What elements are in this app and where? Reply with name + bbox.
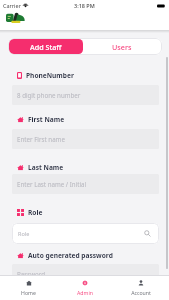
staticText: Password xyxy=(17,270,45,278)
staticText: Enter First name xyxy=(17,135,65,143)
button[interactable]: Account xyxy=(113,276,169,300)
button[interactable]: 8 digit phone number xyxy=(12,85,159,105)
staticText: Users xyxy=(112,42,132,52)
staticText: Add Staff xyxy=(30,42,62,52)
staticText: Last Name xyxy=(28,163,64,172)
staticText: Home xyxy=(21,289,36,296)
button[interactable]: Add Staff xyxy=(9,39,83,54)
button[interactable]: Home xyxy=(0,276,57,300)
staticText: Admin xyxy=(77,289,93,296)
other: App logo xyxy=(6,12,25,25)
staticText: Carrier xyxy=(3,2,21,9)
button[interactable]: Password xyxy=(12,264,159,284)
button[interactable]: Role xyxy=(12,223,159,244)
staticText: PhoneNumber xyxy=(26,71,74,80)
staticText: Enter Last name / Initial xyxy=(17,180,87,188)
staticText: First Name xyxy=(28,115,65,124)
staticText: 8 digit phone number xyxy=(17,91,81,99)
staticText: Auto generated password xyxy=(28,251,113,260)
staticText: Account xyxy=(131,289,151,296)
button[interactable]: Enter Last name / Initial xyxy=(12,174,159,194)
other: Search role xyxy=(144,230,151,237)
button[interactable]: Users xyxy=(83,39,161,54)
button[interactable]: Enter First name xyxy=(12,129,159,149)
staticText: Role xyxy=(28,208,43,217)
staticText: 3:18 PM xyxy=(74,2,95,9)
button[interactable]: Admin xyxy=(57,276,113,300)
staticText: Role xyxy=(18,230,30,237)
